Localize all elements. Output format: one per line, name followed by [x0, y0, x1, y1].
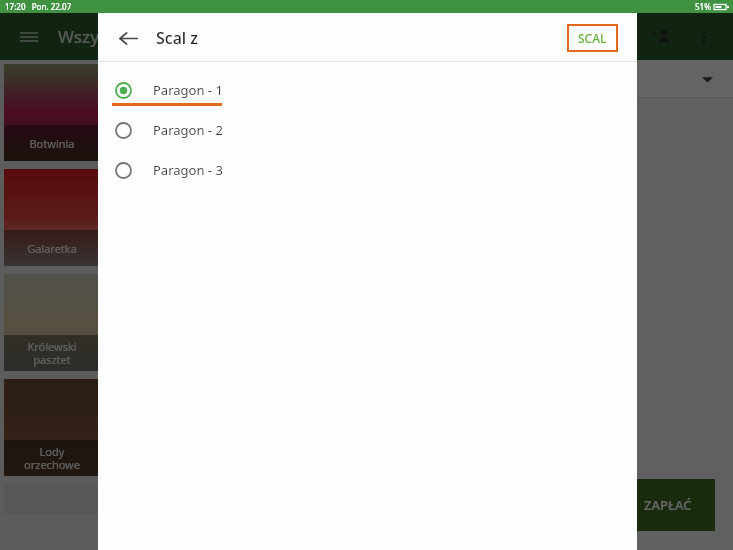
staticText: Wszystkie — [58, 25, 138, 48]
button[interactable]: ZAPŁAĆ — [620, 479, 715, 531]
staticText: Paragon - 3 — [153, 161, 223, 179]
button[interactable]: Paragon - 2 — [98, 110, 637, 150]
staticText: Galaretka — [27, 241, 77, 256]
button[interactable]: Add person — [645, 20, 679, 54]
staticText: SCAL — [578, 30, 607, 46]
staticText: 51% — [695, 1, 711, 12]
button[interactable]: Paragon - 1 — [98, 70, 637, 110]
staticText: Paragon - 2 — [153, 121, 223, 139]
button[interactable]: Galaretka — [4, 169, 99, 266]
staticText: Botwinia — [29, 136, 75, 151]
button[interactable]: Paragon - 3 — [98, 150, 637, 190]
button[interactable]: Lody orzechowe — [4, 379, 99, 476]
staticText: Lody orzechowe — [24, 444, 80, 472]
staticText: Scal z — [156, 27, 198, 49]
staticText: ZAPŁAĆ — [644, 496, 692, 514]
staticText: Królewski pasztet — [27, 339, 77, 367]
button[interactable]: Menu — [14, 22, 44, 52]
button[interactable]: Dropdown — [695, 67, 719, 91]
button[interactable]: Królewski pasztet — [4, 274, 99, 371]
button[interactable]: SCAL — [578, 30, 607, 46]
staticText: 17:20 Pon. 22.07 — [5, 1, 72, 12]
staticText: Paragon - 1 — [153, 81, 223, 99]
button[interactable]: Botwinia — [4, 64, 99, 161]
button[interactable]: Back — [110, 20, 146, 56]
